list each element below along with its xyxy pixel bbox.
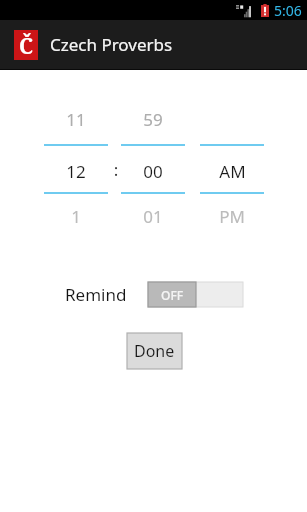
staticText: AM bbox=[219, 160, 246, 183]
staticText: Remind bbox=[65, 283, 127, 306]
staticText: 01 bbox=[143, 205, 163, 228]
staticText: 59 bbox=[143, 108, 163, 131]
staticText: 00 bbox=[143, 160, 163, 183]
staticText: : bbox=[111, 158, 121, 181]
staticText: PM bbox=[219, 205, 245, 228]
button[interactable]: 12 bbox=[44, 155, 108, 188]
button[interactable]: Done bbox=[127, 333, 182, 369]
staticText: Czech Proverbs bbox=[50, 33, 173, 56]
staticText: 12 bbox=[66, 160, 86, 183]
staticText: OFF bbox=[161, 287, 184, 303]
staticText: 1 bbox=[71, 205, 81, 228]
button[interactable]: AM bbox=[200, 155, 264, 188]
staticText: Č bbox=[19, 32, 34, 61]
button[interactable]: Remind toggle, off bbox=[148, 282, 243, 307]
button[interactable]: 00 bbox=[121, 155, 185, 188]
staticText: 11 bbox=[66, 108, 86, 131]
staticText: Done bbox=[134, 340, 175, 362]
staticText: 5:06 bbox=[274, 1, 302, 20]
